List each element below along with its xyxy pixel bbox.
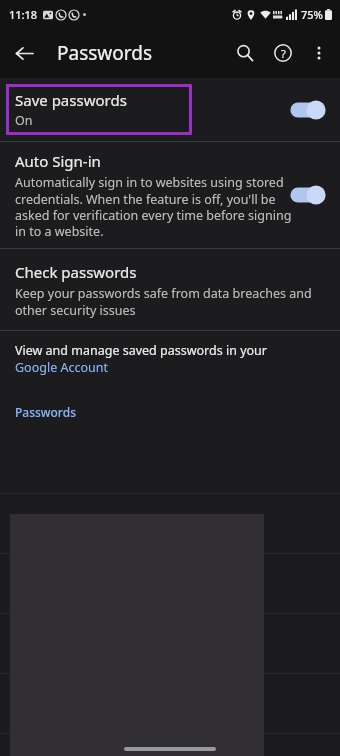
button[interactable]: Search bbox=[226, 34, 264, 72]
staticText: Auto Sign-in bbox=[15, 151, 101, 171]
staticText: ? bbox=[281, 46, 286, 61]
staticText: Passwords bbox=[57, 40, 153, 66]
staticText: On bbox=[15, 112, 33, 129]
button[interactable]: Auto Sign-in bbox=[0, 142, 340, 248]
staticText: 75% bbox=[301, 7, 323, 22]
staticText: Passwords bbox=[15, 404, 76, 420]
button[interactable]: Save passwords bbox=[0, 78, 340, 141]
button[interactable]: Check passwords bbox=[0, 249, 340, 330]
staticText: Check passwords bbox=[15, 262, 137, 282]
staticText: Automatically sign in to websites using … bbox=[15, 174, 292, 239]
staticText: 11:18 bbox=[9, 7, 38, 22]
button[interactable]: Back bbox=[6, 35, 42, 71]
button[interactable]: Toggle bbox=[288, 182, 328, 208]
button[interactable]: Toggle bbox=[288, 97, 328, 123]
staticText: Save passwords bbox=[15, 90, 127, 110]
staticText: Keep your passwords safe from data breac… bbox=[15, 285, 316, 318]
button[interactable]: Help bbox=[264, 34, 302, 72]
staticText: Google Account bbox=[15, 359, 108, 376]
button[interactable]: More options bbox=[302, 36, 336, 70]
staticText: View and manage saved passwords in your bbox=[15, 342, 267, 359]
button[interactable]: View and manage saved passwords in your bbox=[0, 331, 340, 386]
